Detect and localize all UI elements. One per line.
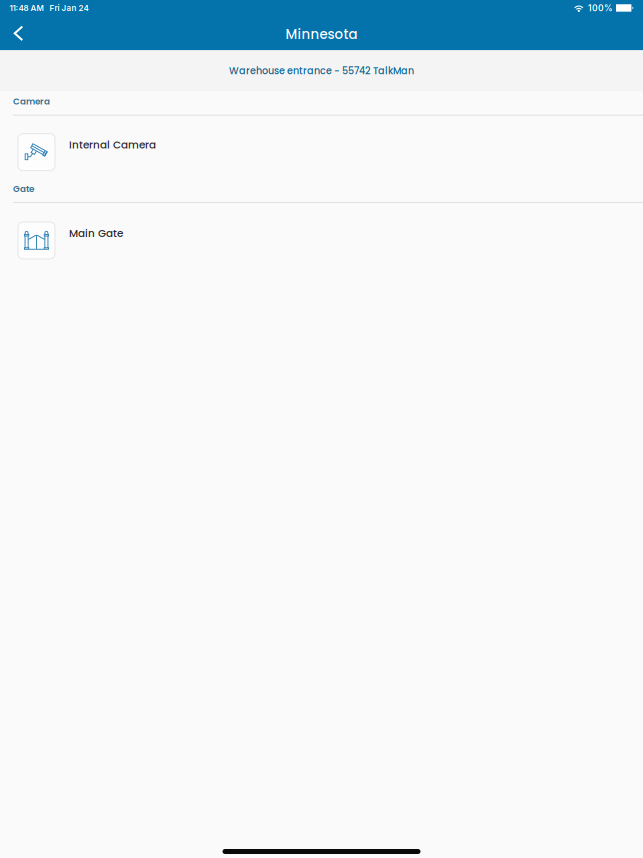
- staticText: Gate: [13, 183, 34, 195]
- staticText: Main Gate: [69, 226, 123, 241]
- staticText: 100%: [588, 3, 613, 13]
- staticText: Internal Camera: [69, 138, 156, 152]
- button[interactable]: Internal Camera: [0, 134, 643, 171]
- staticText: Camera: [13, 95, 50, 108]
- staticText: Warehouse entrance - 55742 TalkMan: [229, 64, 414, 77]
- staticText: Fri Jan 24: [49, 3, 88, 13]
- staticText: Minnesota: [285, 25, 357, 44]
- button[interactable]: Back: [0, 21, 37, 48]
- button[interactable]: Main Gate: [0, 222, 643, 259]
- staticText: 11:48 AM: [9, 3, 43, 13]
